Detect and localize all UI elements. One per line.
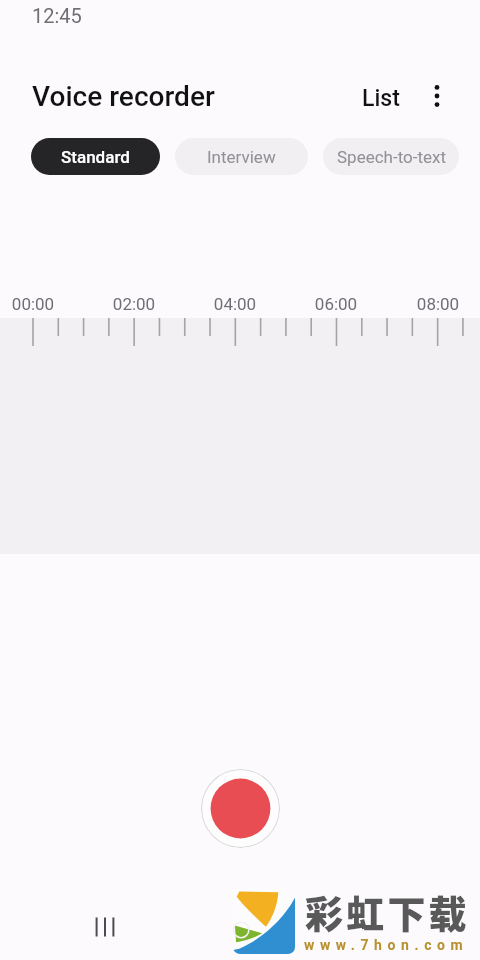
button[interactable]: Recents [85,907,125,947]
button[interactable]: Record [201,769,280,848]
button[interactable]: More options [417,76,457,116]
button[interactable]: Speech-to-text [323,138,459,175]
staticText: List [362,85,400,112]
button[interactable]: List [347,74,415,122]
button[interactable]: Standard [31,138,160,175]
staticText: 12:45 [32,4,82,27]
staticText: 04:00 [195,294,275,314]
staticText: www.7hon.com [304,937,469,953]
staticText: 02:00 [94,294,174,314]
staticText: Standard [61,147,130,167]
staticText: 00:00 [0,294,73,314]
staticText: Speech-to-text [337,147,446,167]
staticText: 彩虹下载 [305,884,470,939]
button[interactable]: Interview [175,138,308,175]
staticText: Interview [207,147,276,167]
staticText: Voice recorder [32,80,215,113]
staticText: 06:00 [296,294,376,314]
staticText: 08:00 [398,294,478,314]
